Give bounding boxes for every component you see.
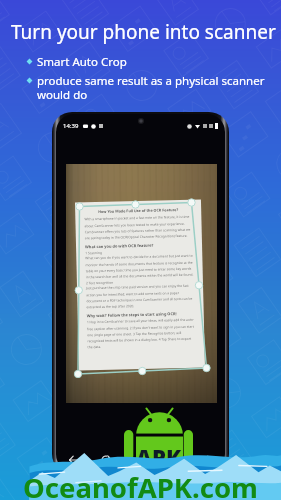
staticText: Turn your phone into scanner	[11, 19, 276, 45]
staticText: With a smartphone in pocket and a fast n…	[84, 215, 193, 240]
staticText: Smart Auto Crop	[37, 54, 127, 70]
staticText: 14:39	[63, 122, 79, 130]
button[interactable]: Back	[62, 448, 86, 472]
staticText: What can you do with OCR feature?	[85, 243, 154, 249]
staticText: What can you do if you want to decide fo…	[85, 254, 194, 279]
staticText: 1 Scanning	[85, 251, 102, 255]
staticText: APK	[136, 442, 181, 472]
button[interactable]: Reload	[94, 448, 118, 472]
staticText: Just purchase the crisp time paid versio…	[86, 284, 194, 309]
staticText: Why wait? Follow the steps to start usin…	[87, 311, 177, 318]
staticText: How You Made Full Use of the OCR Feature…	[84, 207, 192, 214]
button[interactable]: Forward	[195, 448, 219, 472]
staticText: OceanofAPK.com	[23, 469, 258, 500]
staticText: 2 Text recognition	[86, 281, 114, 285]
staticText: produce same result as a physical scanne…	[37, 73, 265, 102]
staticText: 1 Hop in to CamScanner to save all your …	[87, 318, 195, 349]
